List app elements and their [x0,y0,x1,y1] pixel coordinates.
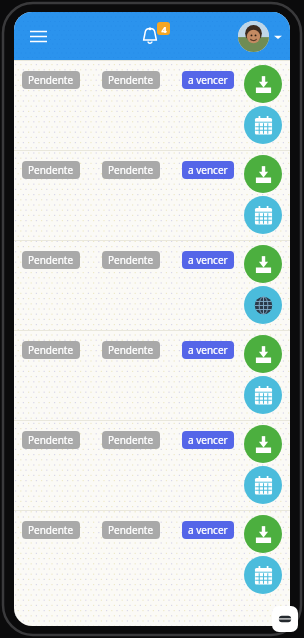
staticText: a vencer [188,163,228,177]
staticText: Pendente [108,433,154,447]
button[interactable]: Pendente [22,521,80,539]
button[interactable]: Pendente [22,251,80,269]
button[interactable]: a vencer [182,71,234,89]
button[interactable]: Schedule [244,376,282,414]
button[interactable]: Pendente [102,71,160,89]
staticText: 4 [161,23,167,35]
staticText: Pendente [28,523,74,537]
staticText: Pendente [28,163,74,177]
staticText: Pendente [28,253,74,267]
staticText: Pendente [28,343,74,357]
staticText: a vencer [188,253,228,267]
button[interactable]: Download [244,425,282,463]
button[interactable]: Pendente [22,161,80,179]
staticText: Pendente [28,433,74,447]
staticText: a vencer [188,343,228,357]
staticText: Pendente [28,73,74,87]
button[interactable]: Pendente [14,511,290,600]
button[interactable]: Schedule [244,12,282,42]
button[interactable]: Schedule [244,196,282,234]
button[interactable]: Pendente [102,341,160,359]
button[interactable]: Pendente [14,61,290,150]
button[interactable]: Pendente [22,341,80,359]
button[interactable]: Open web [244,286,282,324]
button[interactable]: Pendente [102,161,160,179]
button[interactable]: Download [244,245,282,283]
button[interactable]: Download [244,155,282,193]
staticText: a vencer [188,523,228,537]
button[interactable]: Pendente [14,151,290,240]
button[interactable]: Pendente [14,241,290,330]
staticText: Pendente [108,523,154,537]
button[interactable]: a vencer [182,161,234,179]
button[interactable]: Pendente [22,71,80,89]
button[interactable]: Pendente [102,251,160,269]
button[interactable]: Download [244,515,282,553]
button[interactable]: a vencer [182,431,234,449]
button[interactable]: a vencer [182,521,234,539]
button[interactable]: Pendente [102,431,160,449]
button[interactable]: Notifications [133,17,171,55]
staticText: Pendente [108,253,154,267]
button[interactable]: Download [244,335,282,373]
button[interactable]: Accessibility widget [272,606,298,632]
button[interactable]: Download [244,65,282,103]
button[interactable]: Pendente [14,331,290,420]
button[interactable]: a vencer [182,341,234,359]
staticText: Pendente [108,343,154,357]
button[interactable]: Schedule [244,106,282,144]
staticText: a vencer [188,73,228,87]
button[interactable]: a vencer [182,251,234,269]
staticText: Pendente [108,73,154,87]
staticText: Pendente [108,163,154,177]
button[interactable]: Pendente [102,521,160,539]
button[interactable]: Pendente [14,421,290,510]
button[interactable]: Profile menu [234,17,286,56]
button[interactable]: Schedule [244,556,282,594]
staticText: a vencer [188,433,228,447]
button[interactable]: Pendente [22,431,80,449]
button[interactable]: Menu [20,18,56,54]
button[interactable]: Schedule [244,466,282,504]
